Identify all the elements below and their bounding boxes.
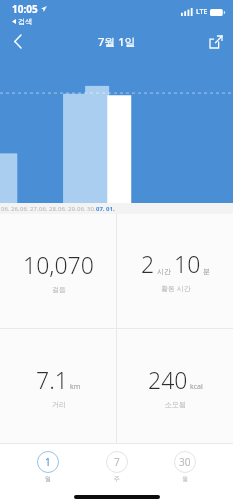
staticText: 월 (182, 475, 188, 483)
staticText: kcal (190, 382, 203, 392)
staticText: 06. 29. (58, 205, 77, 213)
staticText: 소모됨 (165, 400, 186, 409)
staticText: 10,070 (23, 249, 94, 280)
staticText: km (70, 382, 81, 392)
button[interactable]: 2 (117, 214, 233, 328)
staticText: 검색 (18, 17, 32, 26)
staticText: 활동 시간 (161, 284, 191, 294)
staticText: 걸음 (52, 285, 66, 294)
button[interactable]: 240 (117, 329, 233, 443)
staticText: 240 (148, 364, 188, 395)
staticText: 거리 (52, 400, 66, 409)
staticText: 06. 28. (39, 205, 58, 213)
staticText: 06. 26. (1, 205, 20, 213)
staticText: 10:05 (12, 2, 38, 16)
staticText: 주 (114, 475, 120, 483)
button[interactable]: 1 (27, 451, 69, 483)
button[interactable]: 7 (96, 451, 138, 483)
button[interactable]: Share (199, 26, 233, 57)
staticText: 7월 1일 (98, 34, 136, 49)
staticText: 7 (114, 455, 120, 469)
staticText: 일 (45, 475, 51, 483)
staticText: 시간 (157, 267, 171, 276)
button[interactable]: Back (0, 26, 34, 57)
staticText: 06. 27. (20, 205, 39, 213)
staticText: LTE (196, 7, 208, 17)
staticText: 06. 30. (77, 205, 96, 213)
button[interactable]: 30 (164, 451, 206, 483)
staticText: 30 (179, 455, 191, 469)
staticText: 1 (45, 455, 51, 469)
staticText: 7.1 (36, 364, 68, 395)
staticText: 2 (141, 248, 155, 279)
staticText: 분 (203, 267, 210, 276)
button[interactable]: 7.1 (0, 329, 116, 443)
button[interactable]: 10,070 (0, 214, 116, 328)
staticText: 10 (174, 248, 201, 279)
staticText: 07. 01. (96, 205, 115, 213)
